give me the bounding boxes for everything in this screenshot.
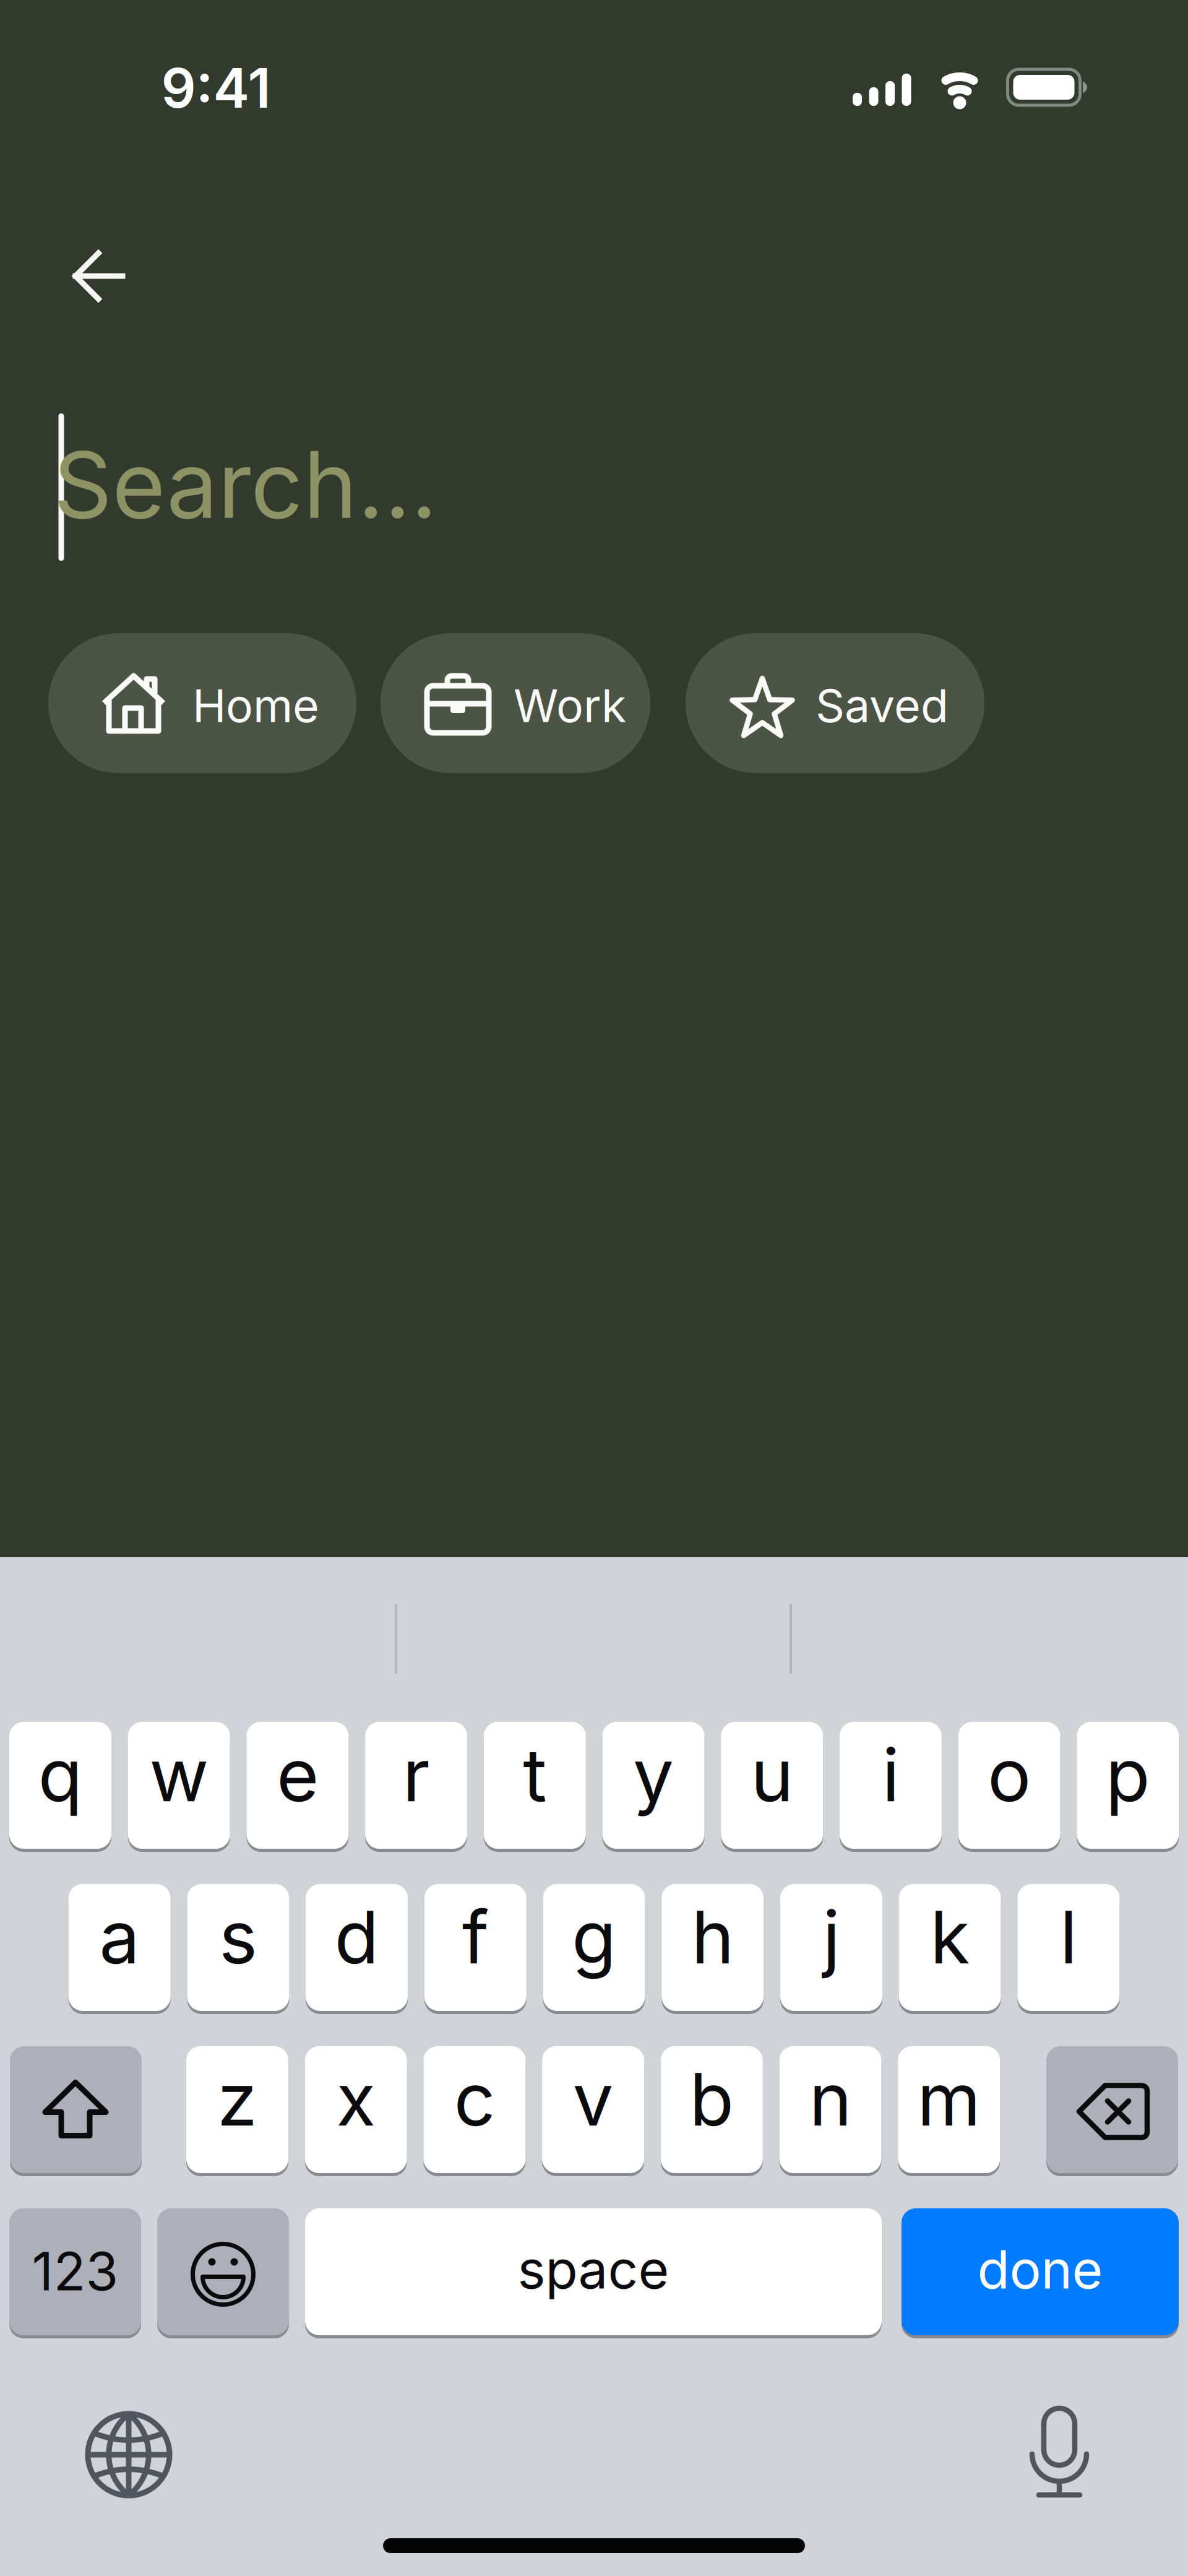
staticText: e xyxy=(277,1732,319,1818)
staticText: b xyxy=(689,2056,734,2142)
staticText: Saved xyxy=(816,679,949,732)
button[interactable]: f xyxy=(424,1882,526,2012)
staticText: o xyxy=(988,1732,1031,1818)
button[interactable] xyxy=(157,2207,289,2337)
staticText: space xyxy=(518,2238,669,2301)
button[interactable]: d xyxy=(306,1882,408,2012)
staticText: p xyxy=(1106,1732,1150,1818)
staticText: k xyxy=(930,1894,970,1980)
button[interactable]: p xyxy=(1077,1720,1179,1850)
staticText: l xyxy=(1060,1894,1077,1980)
button[interactable]: s xyxy=(187,1882,289,2012)
button[interactable] xyxy=(1028,2405,1090,2497)
button[interactable]: m xyxy=(898,2045,1000,2175)
staticText: m xyxy=(917,2056,981,2142)
staticText: i xyxy=(882,1732,899,1818)
button[interactable]: w xyxy=(128,1720,230,1850)
staticText: a xyxy=(99,1894,140,1980)
staticText: s xyxy=(219,1894,257,1980)
staticText: y xyxy=(633,1732,674,1818)
button[interactable]: t xyxy=(484,1720,586,1850)
button[interactable]: v xyxy=(542,2045,644,2175)
button[interactable]: k xyxy=(899,1882,1001,2012)
button[interactable]: o xyxy=(958,1720,1060,1850)
staticText: Search... xyxy=(53,431,437,539)
staticText: w xyxy=(149,1732,209,1818)
button[interactable]: 123 xyxy=(9,2207,141,2337)
staticText: d xyxy=(334,1894,379,1980)
staticText: f xyxy=(462,1894,489,1980)
staticText: z xyxy=(217,2056,257,2142)
button[interactable] xyxy=(56,233,142,319)
button[interactable]: z xyxy=(186,2045,288,2175)
button[interactable]: e xyxy=(247,1720,349,1850)
button[interactable]: j xyxy=(780,1882,882,2012)
button[interactable]: u xyxy=(721,1720,823,1850)
button[interactable]: y xyxy=(602,1720,704,1850)
staticText: g xyxy=(572,1894,616,1980)
button[interactable]: h xyxy=(662,1882,764,2012)
staticText: 123 xyxy=(32,2240,118,2302)
staticText: Home xyxy=(192,679,319,732)
staticText: h xyxy=(691,1894,734,1980)
staticText: done xyxy=(977,2238,1103,2301)
staticText: 9:41 xyxy=(161,56,271,120)
button[interactable]: r xyxy=(365,1720,467,1850)
staticText: u xyxy=(751,1732,793,1818)
button[interactable]: Home xyxy=(48,633,356,773)
button[interactable]: n xyxy=(779,2045,881,2175)
button[interactable]: Saved xyxy=(686,633,984,773)
staticText: t xyxy=(523,1732,547,1818)
button[interactable]: q xyxy=(9,1720,111,1850)
staticText: n xyxy=(809,2056,852,2142)
button[interactable] xyxy=(1046,2045,1178,2175)
button[interactable]: done xyxy=(902,2207,1179,2337)
staticText: v xyxy=(573,2056,614,2142)
button[interactable]: b xyxy=(661,2045,763,2175)
button[interactable]: c xyxy=(423,2045,526,2175)
staticText: j xyxy=(823,1894,840,1980)
staticText: Work xyxy=(514,679,626,732)
staticText: r xyxy=(403,1732,430,1818)
staticText: c xyxy=(454,2056,495,2142)
button[interactable]: l xyxy=(1017,1882,1120,2012)
button[interactable]: Work xyxy=(381,633,650,773)
button[interactable]: space xyxy=(305,2207,882,2337)
button[interactable] xyxy=(10,2045,142,2175)
staticText: q xyxy=(38,1732,83,1818)
button[interactable]: i xyxy=(840,1720,942,1850)
staticText: x xyxy=(336,2056,376,2142)
button[interactable]: a xyxy=(68,1882,171,2012)
button[interactable]: g xyxy=(543,1882,645,2012)
button[interactable] xyxy=(82,2408,175,2501)
button[interactable]: x xyxy=(305,2045,407,2175)
